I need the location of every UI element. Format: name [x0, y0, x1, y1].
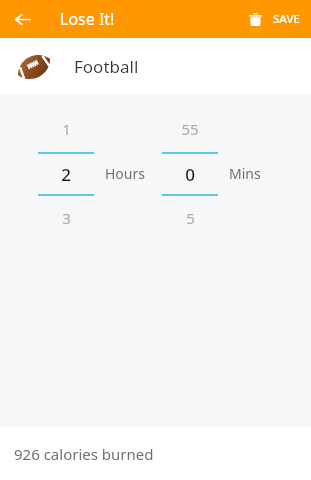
staticText: 55 [181, 119, 199, 139]
button[interactable]: SAVE [271, 11, 311, 27]
button[interactable]: 55 [162, 106, 218, 240]
staticText: 5 [186, 208, 195, 228]
staticText: Football [74, 55, 139, 78]
staticText: Hours [105, 164, 145, 183]
staticText: 1 [62, 119, 71, 139]
button[interactable]: Delete [239, 3, 271, 35]
staticText: Mins [229, 164, 261, 183]
staticText: 0 [185, 163, 195, 186]
staticText: SAVE [273, 11, 300, 27]
staticText: 3 [62, 208, 71, 228]
button[interactable]: 1 [38, 106, 94, 240]
staticText: 2 [61, 163, 71, 186]
staticText: 926 calories burned [14, 444, 154, 464]
staticText: Lose It! [60, 8, 115, 30]
button[interactable]: Back [7, 4, 37, 34]
